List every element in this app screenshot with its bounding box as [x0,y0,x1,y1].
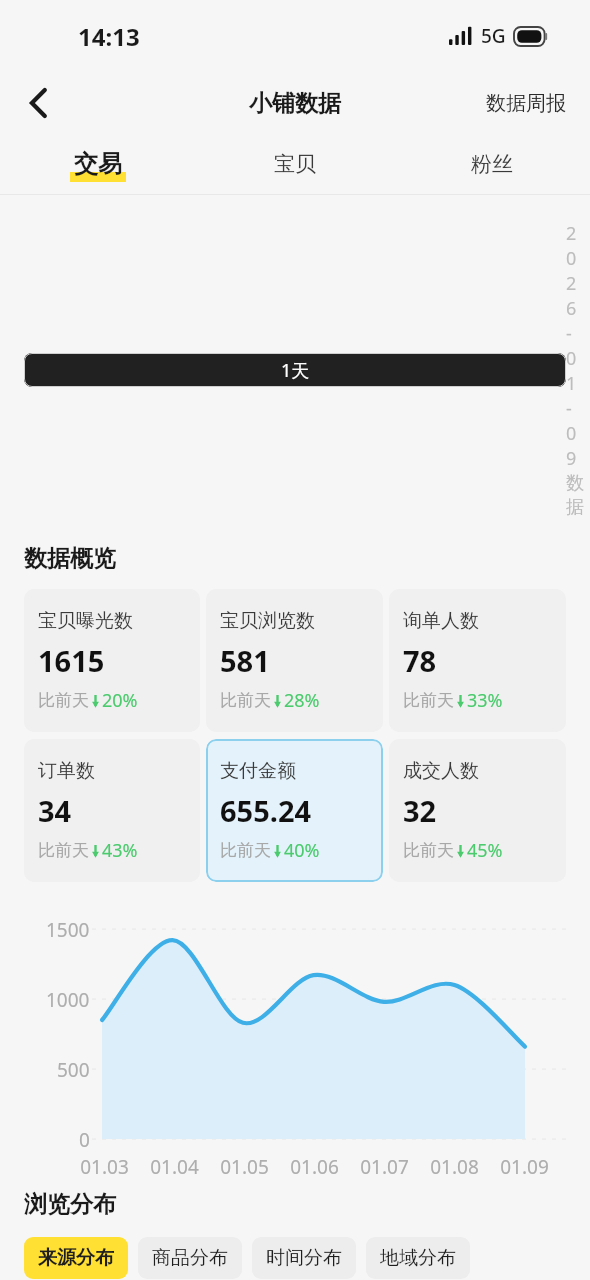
staticText: 粉丝 [471,151,513,177]
staticText: 1615 [38,641,105,680]
staticText: 40% [284,838,320,863]
staticText: 1000 [46,987,90,1013]
staticText: 20% [102,688,138,713]
staticText: 来源分布 [38,1246,114,1270]
staticText: 成交人数 [403,759,479,783]
staticText: 宝贝曝光数 [38,609,133,633]
staticText: 数据概览 [24,544,116,573]
staticText: 14:13 [78,20,140,53]
staticText: 比前天 [403,840,454,861]
staticText: 01.03 [80,1154,129,1180]
staticText: 比前天 [220,690,271,711]
button[interactable]: 宝贝 [196,134,393,194]
staticText: 28% [284,688,320,713]
staticText: 订单数 [38,759,95,783]
button[interactable]: Back [14,79,62,127]
staticText: 比前天 [220,840,271,861]
staticText: 1天 [281,358,310,383]
staticText: 数据周报 [486,91,566,116]
button[interactable]: 支付金额 [206,739,383,882]
staticText: 01.04 [150,1154,199,1180]
button[interactable]: 来源分布 [24,1237,128,1279]
staticText: 581 [220,641,270,680]
staticText: 时间分布 [266,1246,342,1270]
button[interactable]: 数据周报 [474,83,578,124]
staticText: 655.24 [220,791,312,830]
staticText: 比前天 [403,690,454,711]
staticText: 交易 [74,149,122,179]
staticText: 500 [57,1057,90,1083]
staticText: 01.07 [360,1154,409,1180]
staticText: 1500 [46,917,90,943]
button[interactable]: 地域分布 [366,1237,470,1279]
staticText: 45% [467,838,503,863]
staticText: 宝贝浏览数 [220,609,315,633]
staticText: 34 [38,791,72,830]
button[interactable]: 宝贝曝光数 [24,589,200,732]
button[interactable]: 商品分布 [138,1237,242,1279]
staticText: 支付金额 [220,759,296,783]
button[interactable]: 1天 [24,353,566,387]
staticText: 01.09 [500,1154,549,1180]
staticText: 宝贝 [274,151,316,177]
button[interactable]: 宝贝浏览数 [206,589,383,732]
staticText: 比前天 [38,690,89,711]
staticText: 5G [481,23,506,49]
button[interactable]: 询单人数 [389,589,566,732]
staticText: 商品分布 [152,1246,228,1270]
button[interactable]: 订单数 [24,739,200,882]
staticText: 43% [102,838,138,863]
staticText: 01.08 [430,1154,479,1180]
button[interactable]: 粉丝 [393,134,590,194]
button[interactable]: 时间分布 [252,1237,356,1279]
staticText: 地域分布 [380,1246,456,1270]
staticText: 询单人数 [403,609,479,633]
staticText: 浏览分布 [24,1190,116,1219]
staticText: 比前天 [38,840,89,861]
staticText: 01.06 [290,1154,339,1180]
staticText: 01.05 [220,1154,269,1180]
button[interactable]: 交易 [0,134,196,194]
staticText: 78 [403,641,437,680]
staticText: 0 [79,1127,90,1153]
staticText: 32 [403,791,437,830]
button[interactable]: 成交人数 [389,739,566,882]
staticText: 33% [467,688,503,713]
staticText: 小铺数据 [249,89,341,118]
